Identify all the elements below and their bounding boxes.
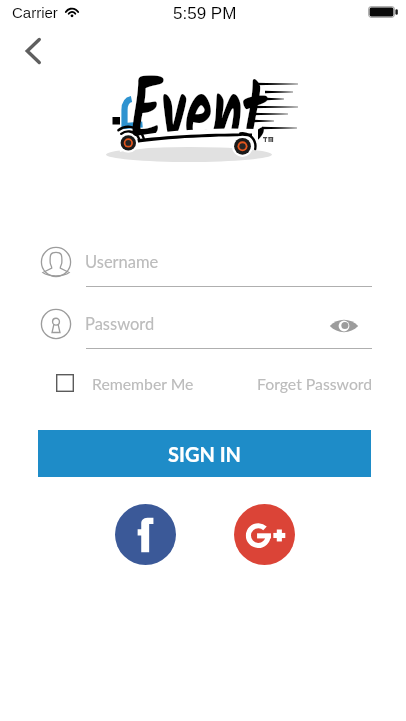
- button[interactable]: Remember Me: [56, 371, 194, 395]
- staticText: Forget Password: [257, 374, 373, 393]
- staticText: Remember Me: [92, 374, 194, 393]
- staticText: Event: [131, 45, 267, 192]
- staticText: 5:59 PM: [173, 4, 237, 23]
- button[interactable]: Back: [13, 32, 51, 70]
- button[interactable]: Sign in with Facebook: [115, 504, 176, 565]
- button[interactable]: Password: [40, 304, 372, 344]
- staticText: Password: [85, 314, 155, 334]
- staticText: Username: [85, 252, 159, 272]
- button[interactable]: Username: [40, 242, 372, 282]
- button[interactable]: Forget Password: [257, 371, 373, 395]
- staticText: SIGN IN: [168, 442, 242, 466]
- button[interactable]: SIGN IN: [38, 430, 371, 477]
- button[interactable]: Sign in with Google: [234, 504, 295, 565]
- button[interactable]: Show password: [324, 306, 364, 346]
- staticText: Carrier: [12, 4, 58, 21]
